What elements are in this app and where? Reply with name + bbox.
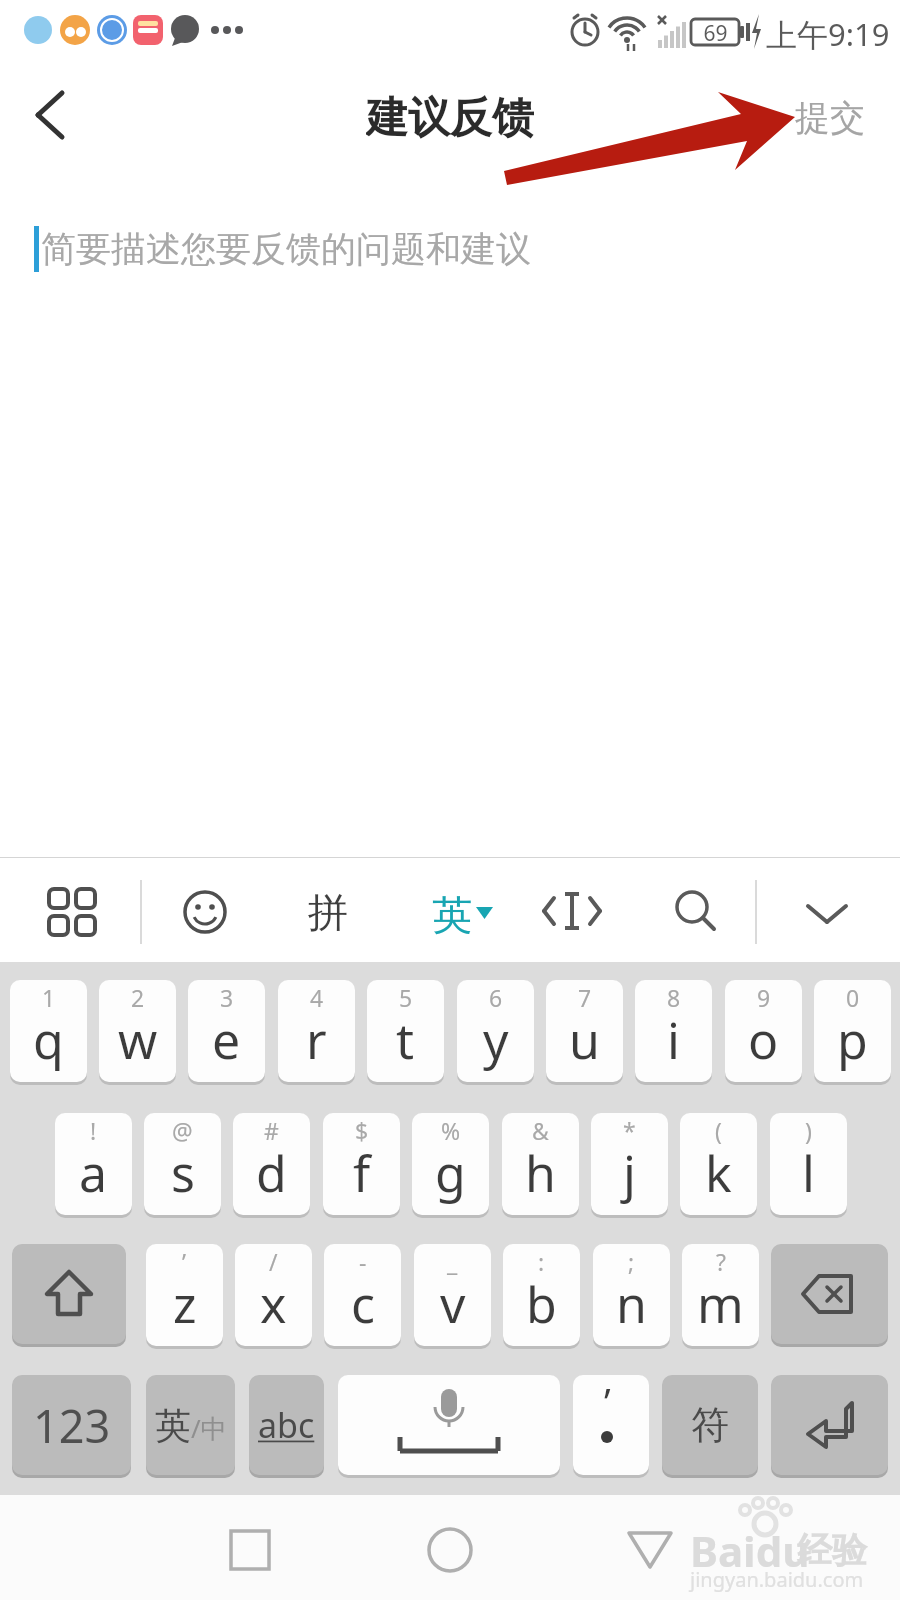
staticText: 3 [220, 982, 234, 1013]
button[interactable]: @ [144, 1113, 221, 1215]
staticText: o [748, 1006, 779, 1074]
staticText: abc [258, 1402, 315, 1448]
button[interactable]: abc [249, 1375, 324, 1475]
button[interactable] [771, 1375, 888, 1475]
button[interactable]: 符 [662, 1375, 758, 1475]
staticText: 上午9:19 [766, 13, 890, 55]
staticText: a [79, 1139, 108, 1207]
staticText: / [269, 1246, 278, 1277]
button[interactable] [44, 884, 100, 940]
staticText: ; [628, 1246, 635, 1277]
button[interactable]: & [502, 1113, 579, 1215]
staticText: _ [447, 1246, 458, 1277]
staticText: 123 [33, 1395, 111, 1456]
button[interactable] [626, 1526, 674, 1574]
button[interactable]: ’ [573, 1375, 649, 1475]
button[interactable] [771, 1244, 888, 1344]
button[interactable]: 2 [99, 980, 176, 1082]
staticText: * [623, 1115, 636, 1146]
button[interactable]: $ [323, 1113, 400, 1215]
staticText: 符 [691, 1401, 729, 1449]
staticText: : [538, 1246, 545, 1277]
button[interactable] [12, 1244, 126, 1344]
button[interactable]: 6 [457, 980, 534, 1082]
button[interactable]: ’ [146, 1244, 223, 1346]
button[interactable]: 1 [10, 980, 87, 1082]
button[interactable]: 提交 [780, 92, 880, 144]
staticText: 英/中 [155, 1403, 227, 1448]
button[interactable]: 0 [814, 980, 891, 1082]
staticText: r [306, 1006, 327, 1074]
button[interactable]: 简要描述您要反馈的问题和建议 [20, 210, 880, 290]
staticText: f [353, 1139, 371, 1207]
staticText: e [212, 1006, 241, 1074]
staticText: ’ [604, 1375, 611, 1427]
staticText: 简要描述您要反馈的问题和建议 [41, 227, 531, 271]
staticText: w [118, 1006, 158, 1074]
button[interactable]: 7 [546, 980, 623, 1082]
button[interactable]: / [235, 1244, 312, 1346]
staticText: 8 [667, 982, 681, 1013]
button[interactable] [542, 890, 602, 934]
button[interactable]: - [324, 1244, 401, 1346]
staticText: ’ [182, 1246, 187, 1277]
staticText: v [440, 1270, 466, 1338]
button[interactable]: 拼 [300, 884, 356, 940]
button[interactable] [182, 889, 228, 935]
button[interactable]: 3 [188, 980, 265, 1082]
button[interactable] [670, 886, 722, 938]
staticText: ? [716, 1246, 726, 1277]
button[interactable]: 4 [278, 980, 355, 1082]
button[interactable]: 123 [12, 1375, 131, 1475]
staticText: 0 [846, 982, 860, 1013]
button[interactable] [800, 894, 856, 934]
button[interactable] [226, 1526, 274, 1574]
button[interactable] [338, 1375, 560, 1475]
staticText: 5 [399, 982, 413, 1013]
staticText: @ [172, 1115, 193, 1146]
staticText: k [705, 1139, 732, 1207]
staticText: & [532, 1115, 549, 1146]
staticText: d [256, 1139, 287, 1207]
staticText: 经验 [797, 1528, 867, 1572]
staticText: - [359, 1246, 367, 1277]
button[interactable] [426, 1526, 474, 1574]
button[interactable]: 5 [367, 980, 444, 1082]
staticText: t [396, 1006, 415, 1074]
staticText: ) [805, 1115, 812, 1146]
staticText: h [525, 1139, 556, 1207]
button[interactable]: ; [593, 1244, 670, 1346]
staticText: g [435, 1139, 466, 1207]
button[interactable] [20, 85, 80, 145]
button[interactable]: * [591, 1113, 668, 1215]
staticText: 4 [310, 982, 324, 1013]
button[interactable]: % [412, 1113, 489, 1215]
staticText: 69 [703, 19, 728, 45]
button[interactable]: _ [414, 1244, 491, 1346]
staticText: ( [715, 1115, 722, 1146]
button[interactable]: ! [55, 1113, 132, 1215]
staticText: % [441, 1115, 461, 1146]
staticText: 7 [578, 982, 592, 1013]
staticText: 6 [489, 982, 503, 1013]
button[interactable]: 8 [635, 980, 712, 1082]
staticText: j [623, 1139, 636, 1207]
staticText: ! [90, 1115, 97, 1146]
button[interactable]: # [233, 1113, 310, 1215]
button[interactable]: 9 [725, 980, 802, 1082]
staticText: m [697, 1270, 744, 1338]
button[interactable]: ? [682, 1244, 759, 1346]
staticText: z [173, 1270, 197, 1338]
staticText: 1 [42, 982, 56, 1013]
button[interactable]: 英 [428, 884, 500, 940]
staticText: l [802, 1139, 815, 1207]
staticText: 2 [131, 982, 145, 1013]
staticText: jingyan.baidu.com [690, 1566, 864, 1593]
staticText: $ [355, 1115, 369, 1146]
button[interactable]: ) [770, 1113, 847, 1215]
button[interactable]: ( [680, 1113, 757, 1215]
button[interactable]: 英/中 [146, 1375, 235, 1475]
staticText: 拼 [308, 887, 348, 937]
button[interactable]: : [503, 1244, 580, 1346]
staticText: s [171, 1139, 195, 1207]
